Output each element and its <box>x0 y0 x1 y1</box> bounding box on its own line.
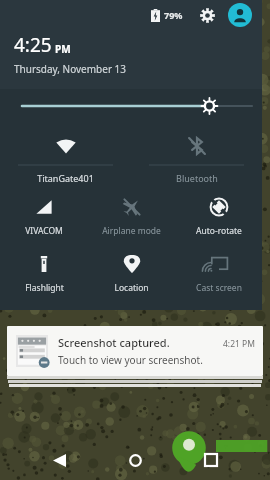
staticText: VIVACOM <box>25 225 63 237</box>
staticText: Bluetooth <box>176 172 218 184</box>
staticText: Location <box>114 282 149 294</box>
button[interactable]: Screenshot captured. <box>7 326 263 376</box>
staticText: 4:21 PM <box>223 338 255 350</box>
staticText: TitanGate401 <box>37 172 94 184</box>
button[interactable]: VIVACOM <box>0 194 88 237</box>
button[interactable]: Settings <box>196 4 218 26</box>
staticText: Screenshot captured. <box>58 335 170 350</box>
button[interactable]: Location <box>88 251 175 294</box>
button[interactable]: Home <box>118 443 152 477</box>
staticText: Airplane mode <box>102 225 161 237</box>
button[interactable]: Airplane mode <box>88 194 175 237</box>
staticText: 4:25 <box>14 32 52 58</box>
staticText: Flashlight <box>25 282 64 294</box>
button[interactable]: Bluetooth <box>131 129 262 184</box>
staticText: PM <box>55 42 71 56</box>
staticText: Thursday, November 13 <box>14 62 127 76</box>
staticText: Cast screen <box>196 282 242 294</box>
button[interactable]: User profile <box>228 3 252 27</box>
button[interactable]: Brightness <box>0 89 262 123</box>
button[interactable]: Recent apps <box>194 443 228 477</box>
button[interactable]: Flashlight <box>0 251 88 294</box>
button[interactable]: Cast screen <box>175 251 262 294</box>
button[interactable]: TitanGate401 <box>0 129 131 184</box>
staticText: 79% <box>164 9 183 21</box>
staticText: Auto-rotate <box>196 225 242 237</box>
staticText: Touch to view your screenshot. <box>58 353 203 367</box>
button[interactable]: Auto-rotate <box>175 194 262 237</box>
button[interactable]: Back <box>42 443 76 477</box>
